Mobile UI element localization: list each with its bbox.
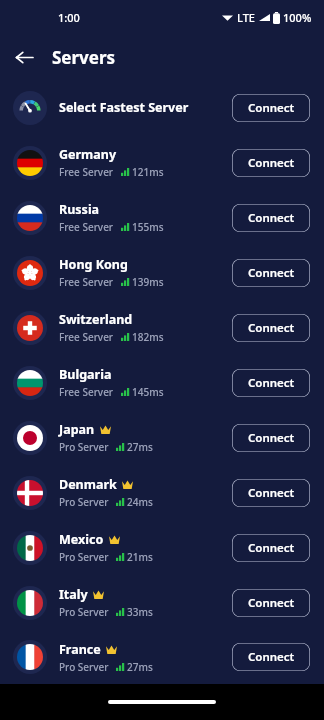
button[interactable]: Russia xyxy=(0,190,324,245)
button[interactable]: Connect xyxy=(232,643,310,671)
button[interactable]: Connect xyxy=(232,369,310,397)
staticText: Connect xyxy=(248,485,295,501)
staticText: 27ms xyxy=(127,660,153,674)
button[interactable]: Connect xyxy=(232,424,310,452)
staticText: Hong Kong xyxy=(59,256,128,273)
staticText: Pro Server xyxy=(59,550,109,564)
staticText: Free Server xyxy=(59,165,114,179)
button[interactable]: Mexico xyxy=(0,520,324,575)
staticText: Bulgaria xyxy=(59,366,112,383)
staticText: 33ms xyxy=(127,605,153,619)
button[interactable]: Connect xyxy=(232,94,310,122)
staticText: Germany xyxy=(59,146,117,163)
staticText: Connect xyxy=(248,540,295,556)
staticText: Italy xyxy=(59,586,88,603)
staticText: Switzerland xyxy=(59,311,133,328)
staticText: Select Fastest Server xyxy=(59,99,232,116)
staticText: 27ms xyxy=(127,440,153,454)
staticText: 182ms xyxy=(132,330,164,344)
staticText: Connect xyxy=(248,265,295,281)
staticText: 100% xyxy=(283,10,312,25)
staticText: 1:00 xyxy=(58,10,80,25)
staticText: France xyxy=(59,641,101,658)
staticText: 21ms xyxy=(127,550,153,564)
button[interactable]: Connect xyxy=(232,314,310,342)
button[interactable]: Connect xyxy=(232,479,310,507)
button[interactable]: Japan xyxy=(0,410,324,465)
staticText: Free Server xyxy=(59,220,114,234)
button[interactable]: Denmark xyxy=(0,465,324,520)
staticText: Pro Server xyxy=(59,440,109,454)
staticText: Free Server xyxy=(59,385,114,399)
staticText: Pro Server xyxy=(59,605,109,619)
staticText: 145ms xyxy=(132,385,164,399)
staticText: Connect xyxy=(248,210,295,226)
staticText: Connect xyxy=(248,375,295,391)
staticText: 121ms xyxy=(132,165,164,179)
button[interactable]: Connect xyxy=(232,259,310,287)
button[interactable]: Connect xyxy=(232,149,310,177)
staticText: Japan xyxy=(59,421,95,438)
button[interactable]: Germany xyxy=(0,135,324,190)
staticText: Free Server xyxy=(59,275,114,289)
staticText: LTE xyxy=(237,10,255,25)
staticText: Connect xyxy=(248,649,295,665)
staticText: Connect xyxy=(248,155,295,171)
staticText: 139ms xyxy=(132,275,164,289)
button[interactable]: Connect xyxy=(232,204,310,232)
button[interactable]: Connect xyxy=(232,534,310,562)
staticText: Free Server xyxy=(59,330,114,344)
button[interactable]: Connect xyxy=(232,589,310,617)
button[interactable]: Italy xyxy=(0,575,324,630)
staticText: Denmark xyxy=(59,476,117,493)
staticText: Pro Server xyxy=(59,660,109,674)
staticText: Servers xyxy=(52,46,116,69)
staticText: Connect xyxy=(248,430,295,446)
button[interactable]: Select Fastest Server xyxy=(0,80,324,135)
staticText: 24ms xyxy=(127,495,153,509)
button[interactable]: France xyxy=(0,630,324,684)
button[interactable]: Bulgaria xyxy=(0,355,324,410)
staticText: Pro Server xyxy=(59,495,109,509)
staticText: Connect xyxy=(248,100,295,116)
staticText: 155ms xyxy=(132,220,164,234)
staticText: Mexico xyxy=(59,531,104,548)
staticText: Connect xyxy=(248,595,295,611)
button[interactable]: Hong Kong xyxy=(0,245,324,300)
staticText: Russia xyxy=(59,201,100,218)
button[interactable]: Switzerland xyxy=(0,300,324,355)
button[interactable]: Back xyxy=(10,43,38,71)
staticText: Connect xyxy=(248,320,295,336)
